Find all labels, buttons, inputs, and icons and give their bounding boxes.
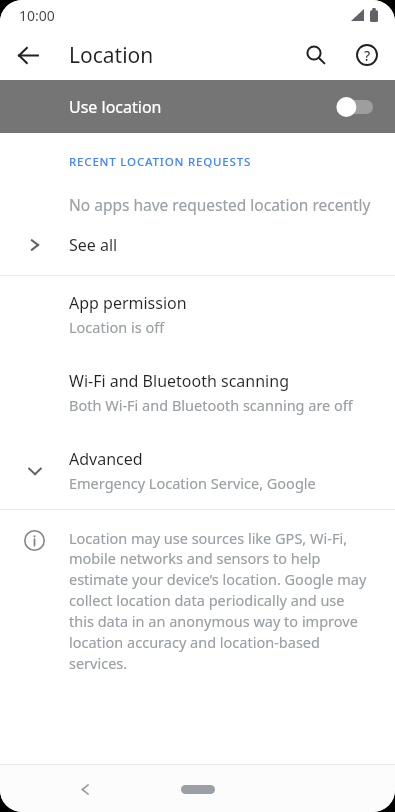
button[interactable]: Home: [168, 772, 228, 806]
staticText: Wi-Fi and Bluetooth scanning: [69, 370, 289, 392]
staticText: ?: [364, 46, 371, 65]
staticText: App permission: [69, 292, 187, 314]
button[interactable]: Back: [64, 768, 106, 810]
staticText: Advanced: [69, 448, 143, 470]
staticText: Location is off: [69, 317, 165, 337]
button[interactable]: See all: [0, 215, 395, 275]
staticText: Both Wi-Fi and Bluetooth scanning are of…: [69, 395, 353, 415]
button[interactable]: Back: [6, 33, 50, 77]
staticText: Emergency Location Service, Google Locat…: [69, 473, 379, 493]
staticText: Location may use sources like GPS, Wi-Fi…: [69, 528, 373, 674]
button[interactable]: Wi-Fi and Bluetooth scanning: [0, 353, 395, 431]
staticText: RECENT LOCATION REQUESTS: [69, 154, 252, 170]
staticText: No apps have requested location recently: [69, 194, 371, 215]
staticText: See all: [69, 234, 118, 256]
button[interactable]: App permission: [0, 276, 395, 353]
button[interactable]: Help: [345, 33, 389, 77]
staticText: 10:00: [19, 6, 55, 25]
staticText: Use location: [69, 96, 335, 118]
staticText: Location: [69, 41, 154, 70]
button[interactable]: Advanced: [0, 431, 395, 497]
button[interactable]: Search: [294, 33, 338, 77]
button[interactable]: Use location: [0, 80, 395, 133]
